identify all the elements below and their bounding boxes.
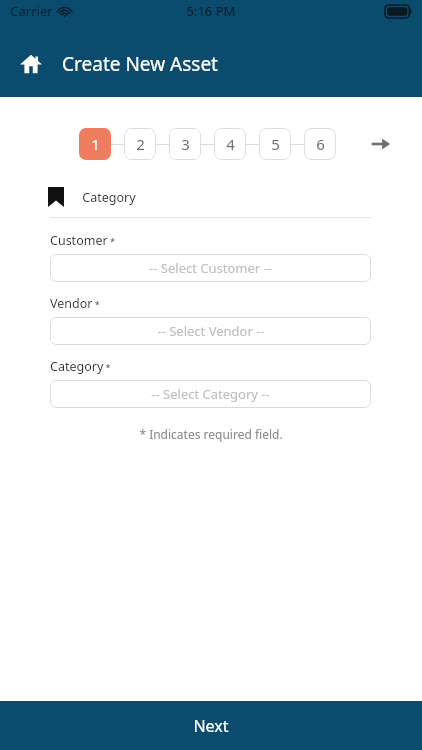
staticText: 3 — [181, 134, 190, 154]
staticText: Create New Asset — [62, 51, 218, 77]
staticText: 6 — [316, 134, 325, 154]
button[interactable]: Home — [14, 47, 48, 81]
button[interactable]: 1 — [79, 128, 111, 160]
staticText: -- Select Category -- — [151, 385, 270, 403]
staticText: -- Select Vendor -- — [157, 322, 265, 340]
staticText: 5:16 PM — [186, 2, 236, 20]
staticText: Carrier — [10, 2, 53, 20]
button[interactable]: 4 — [214, 128, 246, 160]
button[interactable]: 3 — [169, 128, 201, 160]
staticText: 2 — [136, 134, 145, 154]
staticText: Vendor * — [50, 295, 100, 312]
staticText: Customer * — [50, 232, 115, 249]
staticText: Category * — [50, 358, 111, 375]
staticText: -- Select Customer -- — [149, 259, 272, 277]
button[interactable]: -- Select Vendor -- — [50, 317, 371, 345]
staticText: Category — [82, 189, 136, 206]
button[interactable]: Next — [0, 701, 422, 750]
staticText: 1 — [91, 134, 100, 154]
button[interactable]: -- Select Customer -- — [50, 254, 371, 282]
button[interactable]: Next step — [366, 129, 396, 159]
staticText: Next — [193, 715, 229, 737]
button[interactable]: 5 — [259, 128, 291, 160]
staticText: * Indicates required field. — [139, 426, 283, 442]
staticText: 5 — [271, 134, 280, 154]
button[interactable]: 6 — [304, 128, 336, 160]
button[interactable]: 2 — [124, 128, 156, 160]
button[interactable]: -- Select Category -- — [50, 380, 371, 408]
staticText: 4 — [226, 134, 235, 154]
